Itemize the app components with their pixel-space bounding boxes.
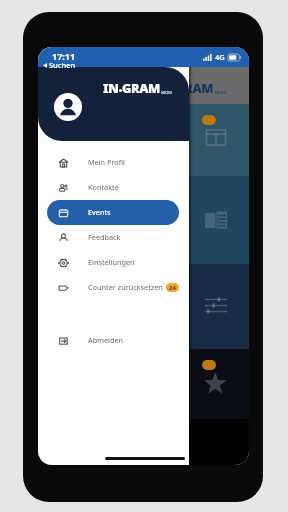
button[interactable]: Kontakte — [47, 175, 179, 200]
button[interactable]: Mein Profil — [47, 150, 179, 175]
staticText: Abmelden — [88, 335, 124, 345]
staticText: 17:11 — [52, 50, 76, 62]
staticText: INGRAM — [160, 79, 214, 96]
staticText: Counter zurücksetzen — [88, 282, 163, 292]
button[interactable]: Einstellungen — [47, 250, 179, 275]
button[interactable]: Abmelden — [47, 328, 179, 353]
staticText: 24 — [169, 284, 176, 292]
staticText: Kontakte — [88, 182, 119, 192]
staticText: Events — [88, 207, 111, 217]
staticText: MICRO — [215, 91, 226, 95]
staticText: GRAM — [122, 79, 160, 96]
staticText: 4G — [215, 52, 225, 62]
staticText: Suchen — [49, 60, 76, 70]
button[interactable]: Feedback — [47, 225, 179, 250]
staticText: MICRO — [161, 91, 172, 95]
staticText: IN — [103, 79, 119, 96]
button[interactable]: Counter zurücksetzen — [47, 275, 179, 300]
button[interactable]: Events — [47, 200, 179, 225]
staticText: Feedback — [88, 232, 121, 242]
staticText: Einstellungen — [88, 257, 135, 267]
staticText: Mein Profil — [88, 157, 125, 167]
